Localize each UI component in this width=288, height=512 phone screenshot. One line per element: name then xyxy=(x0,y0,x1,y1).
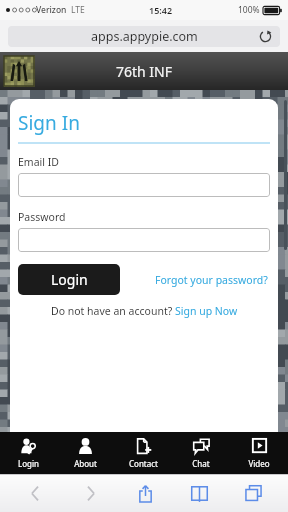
button[interactable]: Back xyxy=(8,475,63,512)
staticText: Login xyxy=(18,458,39,469)
button[interactable]: Contact xyxy=(114,432,172,474)
button[interactable]: Home xyxy=(4,56,34,86)
staticText: Chat xyxy=(192,458,210,469)
staticText: LTE xyxy=(71,4,85,16)
staticText: About xyxy=(74,458,97,469)
staticText: Password xyxy=(18,210,66,224)
staticText: Forgot your password? xyxy=(155,273,268,287)
staticText: Sign In xyxy=(18,110,80,136)
staticText: 15:42 xyxy=(149,4,173,16)
button[interactable] xyxy=(18,173,270,197)
staticText: Video xyxy=(248,458,270,469)
button[interactable]: About xyxy=(57,432,114,474)
button[interactable] xyxy=(18,228,270,252)
staticText: Login xyxy=(51,270,88,289)
button[interactable]: apps.appypie.com xyxy=(8,26,280,47)
button[interactable]: Forward xyxy=(63,475,118,512)
staticText: Email ID xyxy=(18,155,59,169)
button[interactable]: Chat xyxy=(172,432,230,474)
staticText: Verizon xyxy=(36,4,67,16)
button[interactable]: Bookmarks xyxy=(172,475,226,512)
staticText: 100% xyxy=(238,4,260,16)
button[interactable]: Sign up Now xyxy=(175,304,238,318)
staticText: Sign up Now xyxy=(175,304,238,318)
button[interactable]: Login xyxy=(18,264,120,295)
button[interactable]: Tabs xyxy=(226,475,280,512)
staticText: 76th INF xyxy=(116,62,173,81)
staticText: apps.appypie.com xyxy=(91,28,198,45)
staticText: Do not have an account? xyxy=(51,304,175,318)
button[interactable]: Video xyxy=(230,432,288,474)
button[interactable]: Share xyxy=(118,475,172,512)
button[interactable]: Reload xyxy=(258,29,273,44)
button[interactable]: Login xyxy=(0,432,57,474)
staticText: Contact xyxy=(129,458,158,469)
button[interactable]: Forgot your password? xyxy=(155,273,270,287)
